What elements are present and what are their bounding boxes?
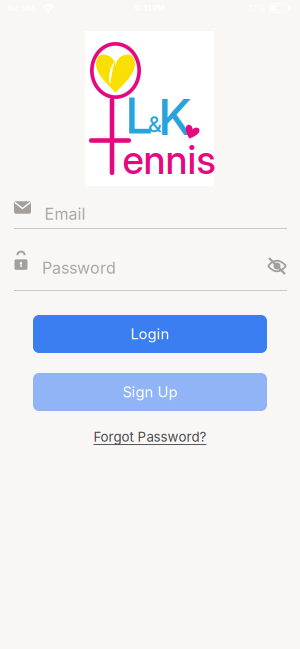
button[interactable]: Show password [267, 257, 287, 275]
staticText: Login [130, 325, 169, 343]
staticText: Sign Up [122, 383, 177, 401]
staticText: Password [42, 259, 116, 277]
staticText: ennis [122, 137, 215, 183]
staticText: Email [44, 205, 85, 223]
staticText: L [125, 86, 153, 145]
button[interactable]: Login [33, 315, 267, 353]
button[interactable]: Forgot Password? [93, 429, 206, 445]
button[interactable]: Email [14, 190, 287, 230]
button[interactable]: Sign Up [33, 373, 267, 411]
staticText: & [148, 112, 162, 137]
staticText: Forgot Password? [93, 429, 206, 445]
staticText: K [158, 88, 192, 146]
staticText: 9:31 PM [134, 3, 164, 13]
button[interactable]: Password [14, 246, 287, 286]
